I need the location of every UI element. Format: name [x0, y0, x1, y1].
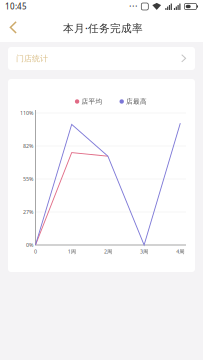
staticText: 3周: [140, 248, 148, 255]
button[interactable]: Back: [2, 14, 24, 40]
staticText: 2周: [104, 248, 112, 255]
staticText: 82%: [23, 142, 33, 150]
staticText: 店平均: [81, 97, 102, 106]
staticText: 店最高: [126, 97, 147, 106]
staticText: 55%: [23, 175, 33, 183]
staticText: 0%: [26, 241, 33, 249]
staticText: 4周: [176, 248, 184, 255]
staticText: 1周: [68, 248, 76, 255]
staticText: 27%: [23, 208, 33, 216]
button[interactable]: 门店统计: [8, 47, 195, 70]
staticText: 110%: [20, 109, 33, 117]
staticText: • • •: [129, 3, 137, 10]
staticText: 门店统计: [16, 54, 48, 63]
staticText: 本月·任务完成率: [63, 21, 143, 35]
staticText: 10:45: [5, 1, 27, 12]
staticText: 0: [34, 248, 37, 255]
